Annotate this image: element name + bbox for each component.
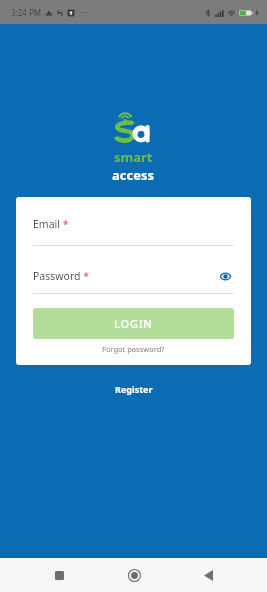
button[interactable]: Recents <box>44 560 74 590</box>
staticText: Register <box>115 383 153 395</box>
button[interactable]: Back <box>193 560 223 590</box>
staticText: 3:24 PM <box>11 7 42 18</box>
button[interactable]: LOGIN <box>33 308 234 339</box>
button[interactable]: Register <box>105 379 163 399</box>
staticText: Forgot password? <box>102 344 165 354</box>
staticText: access <box>112 166 155 184</box>
staticText: Password * <box>33 269 90 283</box>
button[interactable]: Forgot password? <box>98 342 169 356</box>
button[interactable]: Home <box>119 560 149 590</box>
button[interactable]: Show password <box>216 267 234 285</box>
staticText: ⋯ <box>79 8 87 17</box>
staticText: smart <box>114 148 153 166</box>
staticText: Email * <box>33 217 69 231</box>
staticText: LOGIN <box>114 316 153 331</box>
